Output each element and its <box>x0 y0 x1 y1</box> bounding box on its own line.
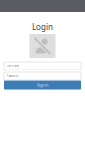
staticText: Sign in <box>37 82 48 88</box>
staticText: Login <box>32 22 53 32</box>
button[interactable]: Username <box>4 62 81 70</box>
button[interactable]: Sign in <box>4 80 81 89</box>
button[interactable]: Password <box>4 72 81 80</box>
staticText: Password <box>6 74 18 78</box>
staticText: Username <box>6 64 19 68</box>
